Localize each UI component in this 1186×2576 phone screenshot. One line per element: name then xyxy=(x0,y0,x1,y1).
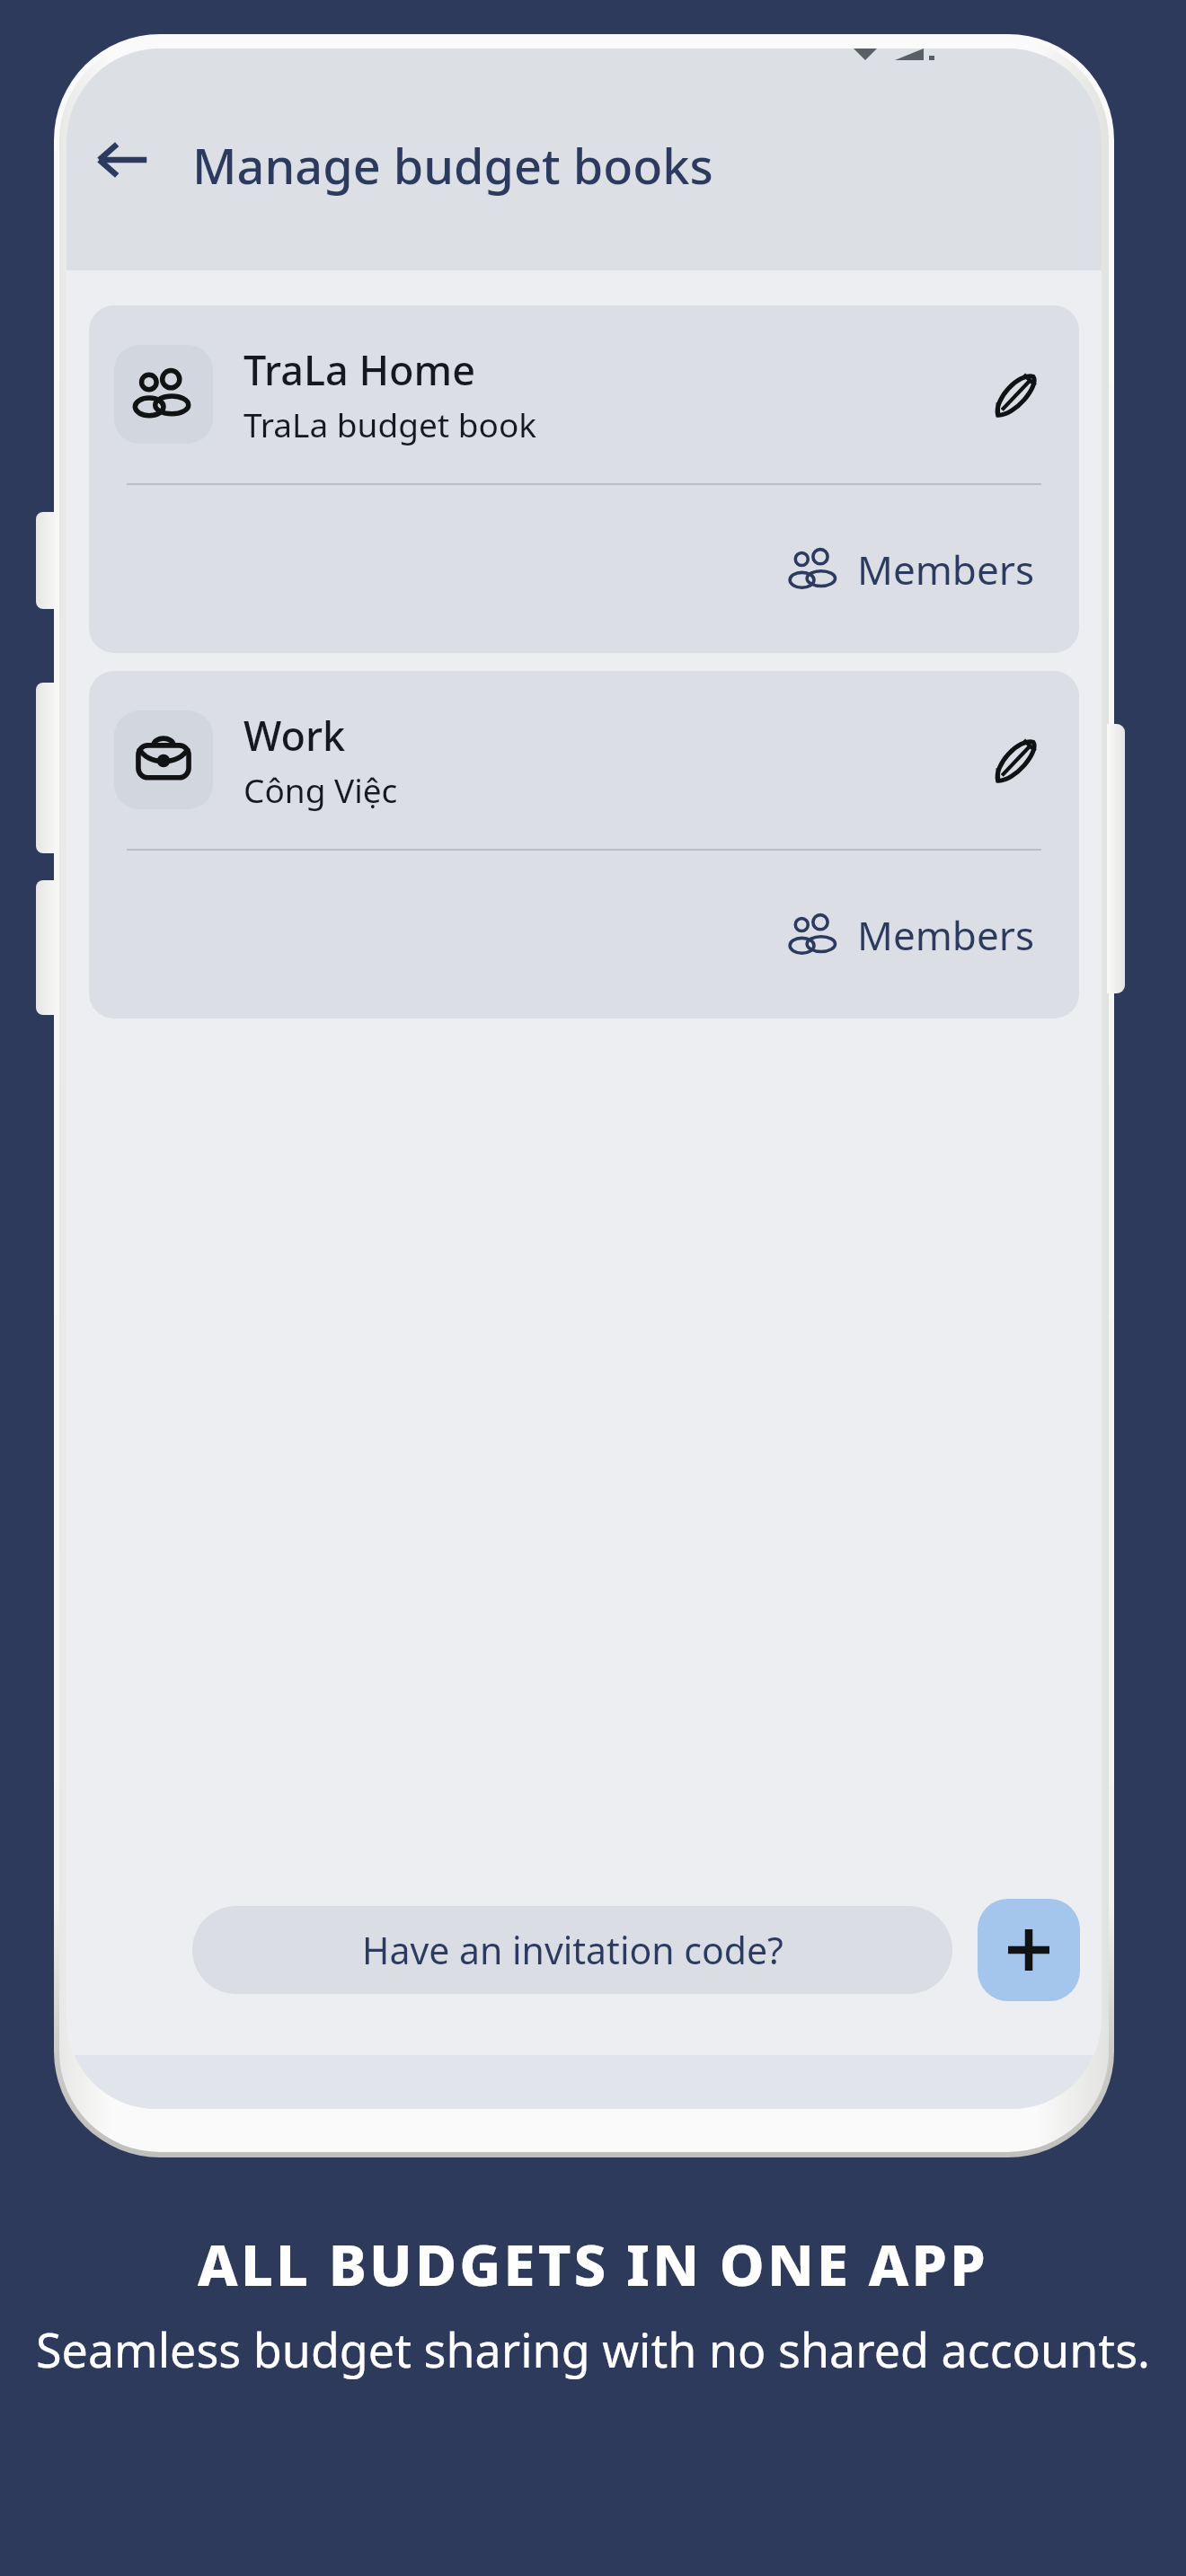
button[interactable]: Back xyxy=(75,113,169,207)
staticText: TraLa Home xyxy=(243,342,475,397)
button[interactable]: Edit xyxy=(964,345,1063,444)
staticText: Have an invitation code? xyxy=(362,1925,783,1975)
staticText: ALL BUDGETS IN ONE APP xyxy=(32,2226,1154,2303)
button[interactable]: Edit xyxy=(964,710,1063,809)
staticText: Manage budget books xyxy=(192,132,713,198)
staticText: Members xyxy=(857,543,1034,596)
button[interactable]: Members xyxy=(776,895,1047,975)
staticText: Members xyxy=(857,908,1034,962)
staticText: TraLa budget book xyxy=(243,401,537,446)
button[interactable]: Work xyxy=(89,671,1079,1019)
button[interactable]: TraLa Home xyxy=(89,305,1079,653)
button[interactable]: Have an invitation code? xyxy=(192,1906,952,1994)
button[interactable]: Add budget book xyxy=(978,1899,1080,2001)
button[interactable]: Members xyxy=(776,530,1047,609)
staticText: Work xyxy=(243,708,346,763)
staticText: Công Việc xyxy=(243,767,398,812)
staticText: Seamless budget sharing with no shared a… xyxy=(32,2317,1154,2381)
